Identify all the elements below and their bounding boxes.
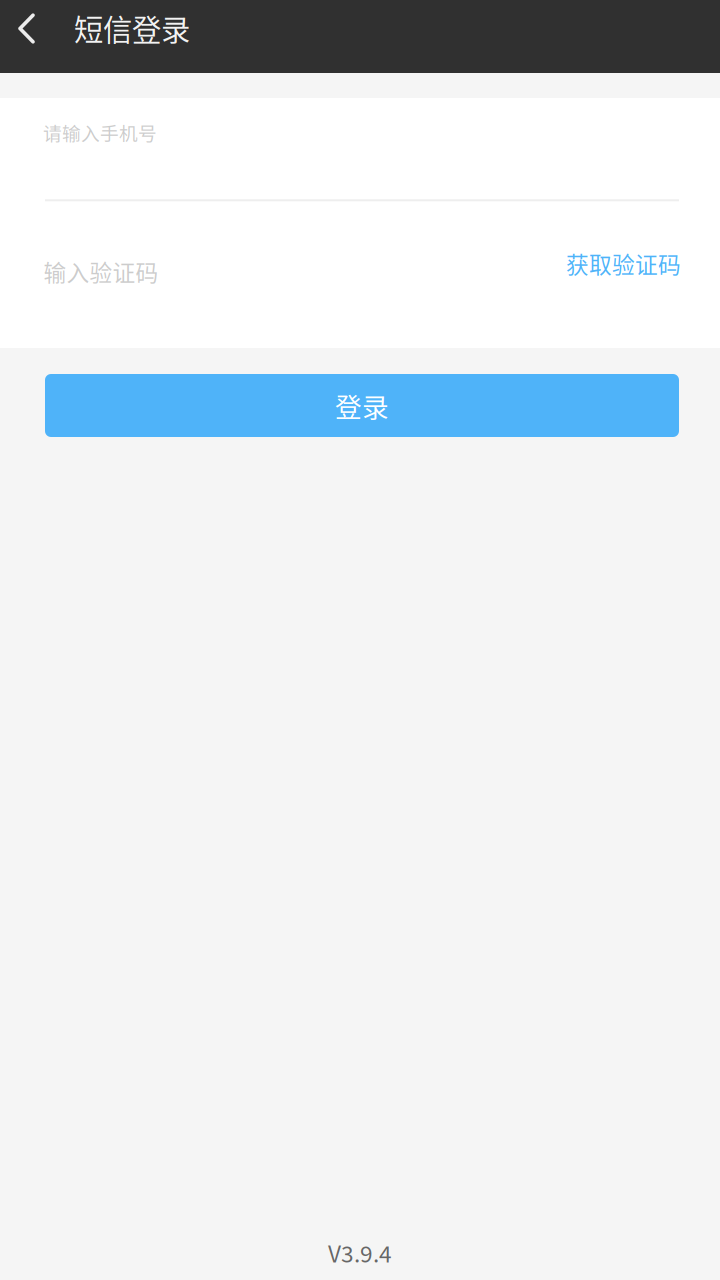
- button[interactable]: 获取验证码: [560, 239, 686, 287]
- button[interactable]: Back: [0, 0, 52, 56]
- staticText: 输入验证码: [43, 255, 158, 288]
- staticText: 短信登录: [74, 7, 190, 49]
- staticText: 登录: [335, 386, 389, 425]
- staticText: 请输入手机号: [43, 119, 157, 146]
- button[interactable]: 登录: [45, 374, 679, 437]
- staticText: 获取验证码: [566, 247, 681, 280]
- staticText: V3.9.4: [328, 1236, 392, 1269]
